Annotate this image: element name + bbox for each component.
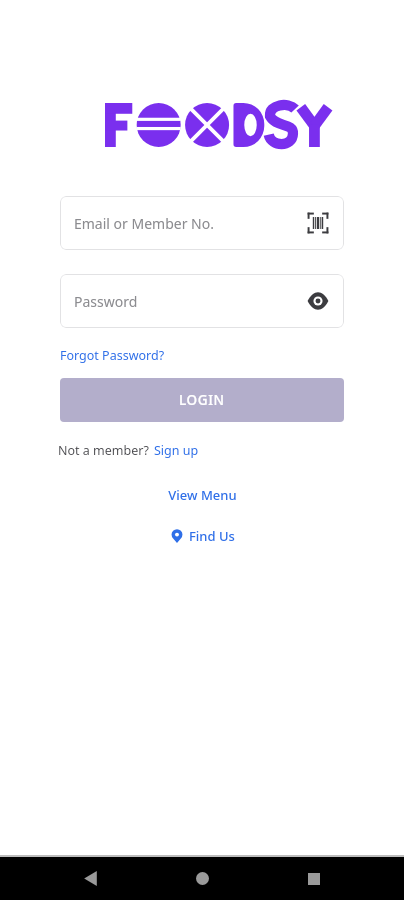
staticText: Forgot Password? [60,347,165,364]
staticText: Find Us [189,527,235,545]
button[interactable]: Back [68,857,112,900]
button[interactable]: Password [60,274,344,328]
button[interactable]: Sign up [153,440,200,461]
staticText: Sign up [154,442,199,459]
button[interactable]: Recent apps [292,857,336,900]
button[interactable]: Show password [305,288,331,314]
button[interactable]: Find Us [164,524,241,548]
button[interactable]: Email or Member No. [60,196,344,250]
button[interactable]: Scan member barcode [305,210,331,236]
button[interactable]: LOGIN [60,378,344,422]
staticText: LOGIN [179,391,225,409]
staticText: Not a member? [58,442,153,459]
button[interactable]: Forgot Password? [58,344,167,367]
staticText: Email or Member No. [74,214,305,233]
button[interactable]: View Menu [162,482,243,508]
staticText: View Menu [168,486,237,504]
button[interactable]: Home [180,857,224,900]
staticText: Password [74,292,305,311]
